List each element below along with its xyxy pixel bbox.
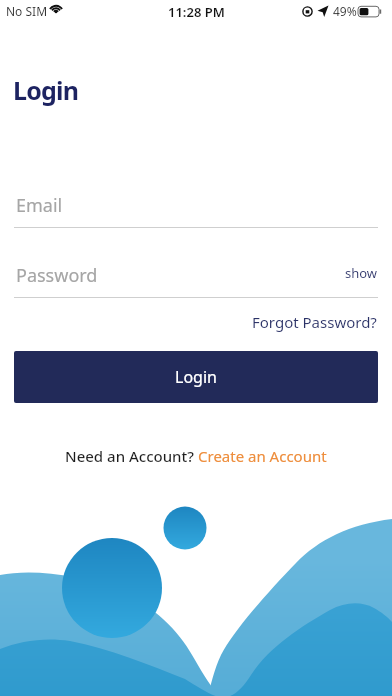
staticText: 11:28 PM	[168, 3, 225, 21]
button[interactable]: Login	[14, 351, 378, 403]
button[interactable]: Password	[14, 260, 378, 298]
staticText: 49%	[333, 3, 357, 19]
staticText: Login	[13, 73, 79, 107]
staticText: Password	[16, 263, 98, 288]
staticText: Login	[175, 366, 217, 388]
staticText: Email	[16, 193, 63, 218]
button[interactable]: Create an Account	[198, 446, 327, 466]
button[interactable]: show	[345, 264, 378, 282]
staticText: No SIM	[6, 3, 48, 19]
button[interactable]: Email	[14, 190, 378, 228]
staticText: Need an Account?	[65, 446, 198, 466]
button[interactable]: Forgot Password?	[252, 312, 377, 332]
